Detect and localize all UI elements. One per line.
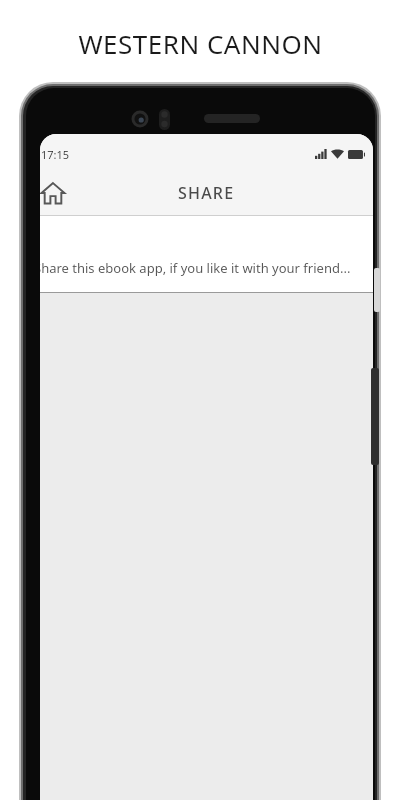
- staticText: 17:15: [41, 147, 70, 162]
- button[interactable]: Share this ebook app, if you like it wit…: [40, 216, 373, 292]
- staticText: Share this ebook app, if you like it wit…: [40, 259, 351, 277]
- staticText: WESTERN CANNON: [78, 26, 323, 61]
- other: Power button: [374, 268, 380, 312]
- other: Volume button: [371, 368, 379, 465]
- button[interactable]: Home: [40, 171, 75, 215]
- staticText: SHARE: [178, 182, 235, 204]
